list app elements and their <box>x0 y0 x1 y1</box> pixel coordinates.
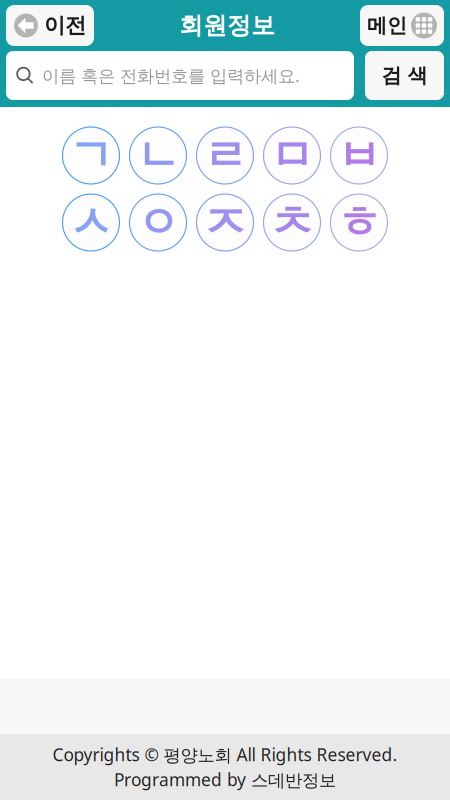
button[interactable]: 메인 <box>360 5 444 46</box>
staticText: Programmed by 스데반정보 <box>114 768 336 791</box>
staticText: Copyrights © 평양노회 All Rights Reserved. <box>52 743 397 766</box>
staticText: ㅅ <box>69 195 113 249</box>
staticText: 이름 혹은 전화번호를 입력하세요. <box>42 64 300 87</box>
staticText: ㅎ <box>337 195 381 249</box>
button[interactable]: Filter by ㅎ <box>330 194 387 251</box>
button[interactable]: 검 색 <box>365 51 444 100</box>
staticText: 회원정보 <box>179 11 275 40</box>
staticText: 메인 <box>367 13 407 38</box>
staticText: ㅊ <box>270 195 314 249</box>
button[interactable]: Filter by ㅂ <box>330 127 387 184</box>
button[interactable]: Filter by ㅈ <box>196 194 253 251</box>
button[interactable]: Filter by ㄹ <box>196 127 253 184</box>
staticText: 이전 <box>44 12 86 39</box>
button[interactable]: Filter by ㅇ <box>129 194 186 251</box>
button[interactable]: Filter by ㅊ <box>263 194 320 251</box>
staticText: ㄹ <box>203 128 247 182</box>
staticText: 검 색 <box>381 63 427 88</box>
button[interactable]: Filter by ㄱ <box>62 127 119 184</box>
staticText: ㄱ <box>69 128 113 182</box>
button[interactable]: Filter by ㅅ <box>62 194 119 251</box>
staticText: ㄴ <box>136 128 180 182</box>
staticText: ㅁ <box>270 128 314 182</box>
button[interactable]: Filter by ㄴ <box>129 127 186 184</box>
staticText: ㅈ <box>203 195 247 249</box>
button[interactable]: Filter by ㅁ <box>263 127 320 184</box>
staticText: ㅇ <box>136 195 180 249</box>
staticText: ㅂ <box>337 128 381 182</box>
button[interactable]: 이전 <box>6 5 94 46</box>
